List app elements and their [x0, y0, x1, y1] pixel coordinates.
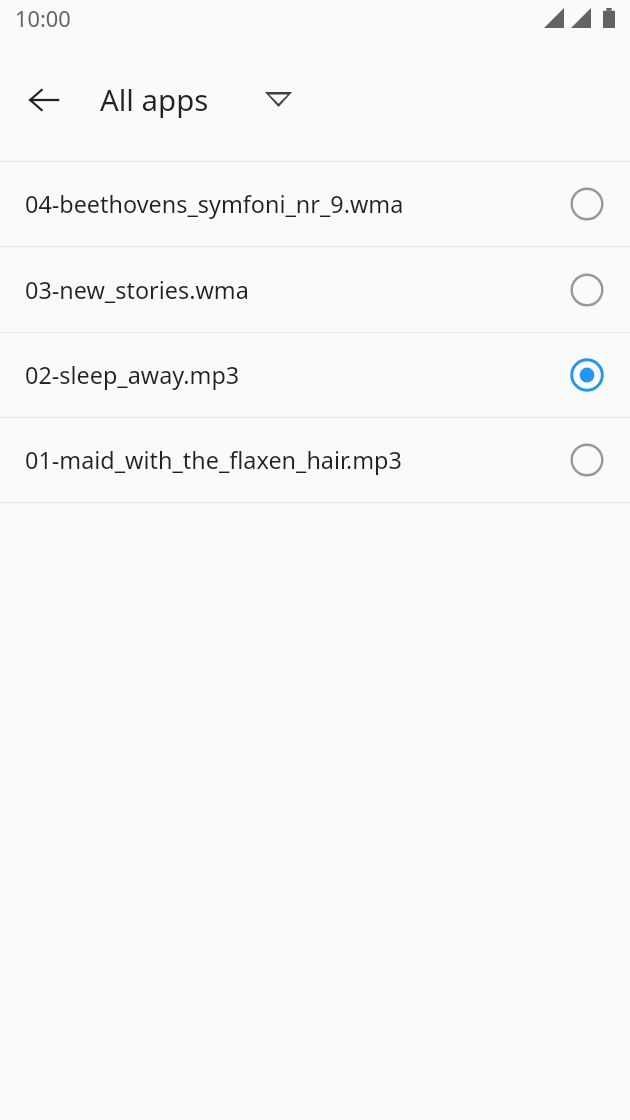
staticText: 04-beethovens_symfoni_nr_9.wma — [25, 188, 570, 220]
button[interactable]: Sort order — [254, 75, 302, 123]
button[interactable]: 03-new_stories.wma — [0, 247, 630, 332]
button[interactable]: 01-maid_with_the_flaxen_hair.mp3 — [0, 418, 630, 502]
staticText: 10:00 — [15, 4, 71, 34]
staticText: All apps — [100, 80, 209, 120]
button[interactable]: 02-sleep_away.mp3 — [0, 333, 630, 417]
staticText: 02-sleep_away.mp3 — [25, 359, 570, 391]
button[interactable]: Back — [21, 76, 69, 124]
button[interactable]: 04-beethovens_symfoni_nr_9.wma — [0, 162, 630, 246]
staticText: 01-maid_with_the_flaxen_hair.mp3 — [25, 444, 570, 476]
staticText: 03-new_stories.wma — [25, 274, 570, 306]
